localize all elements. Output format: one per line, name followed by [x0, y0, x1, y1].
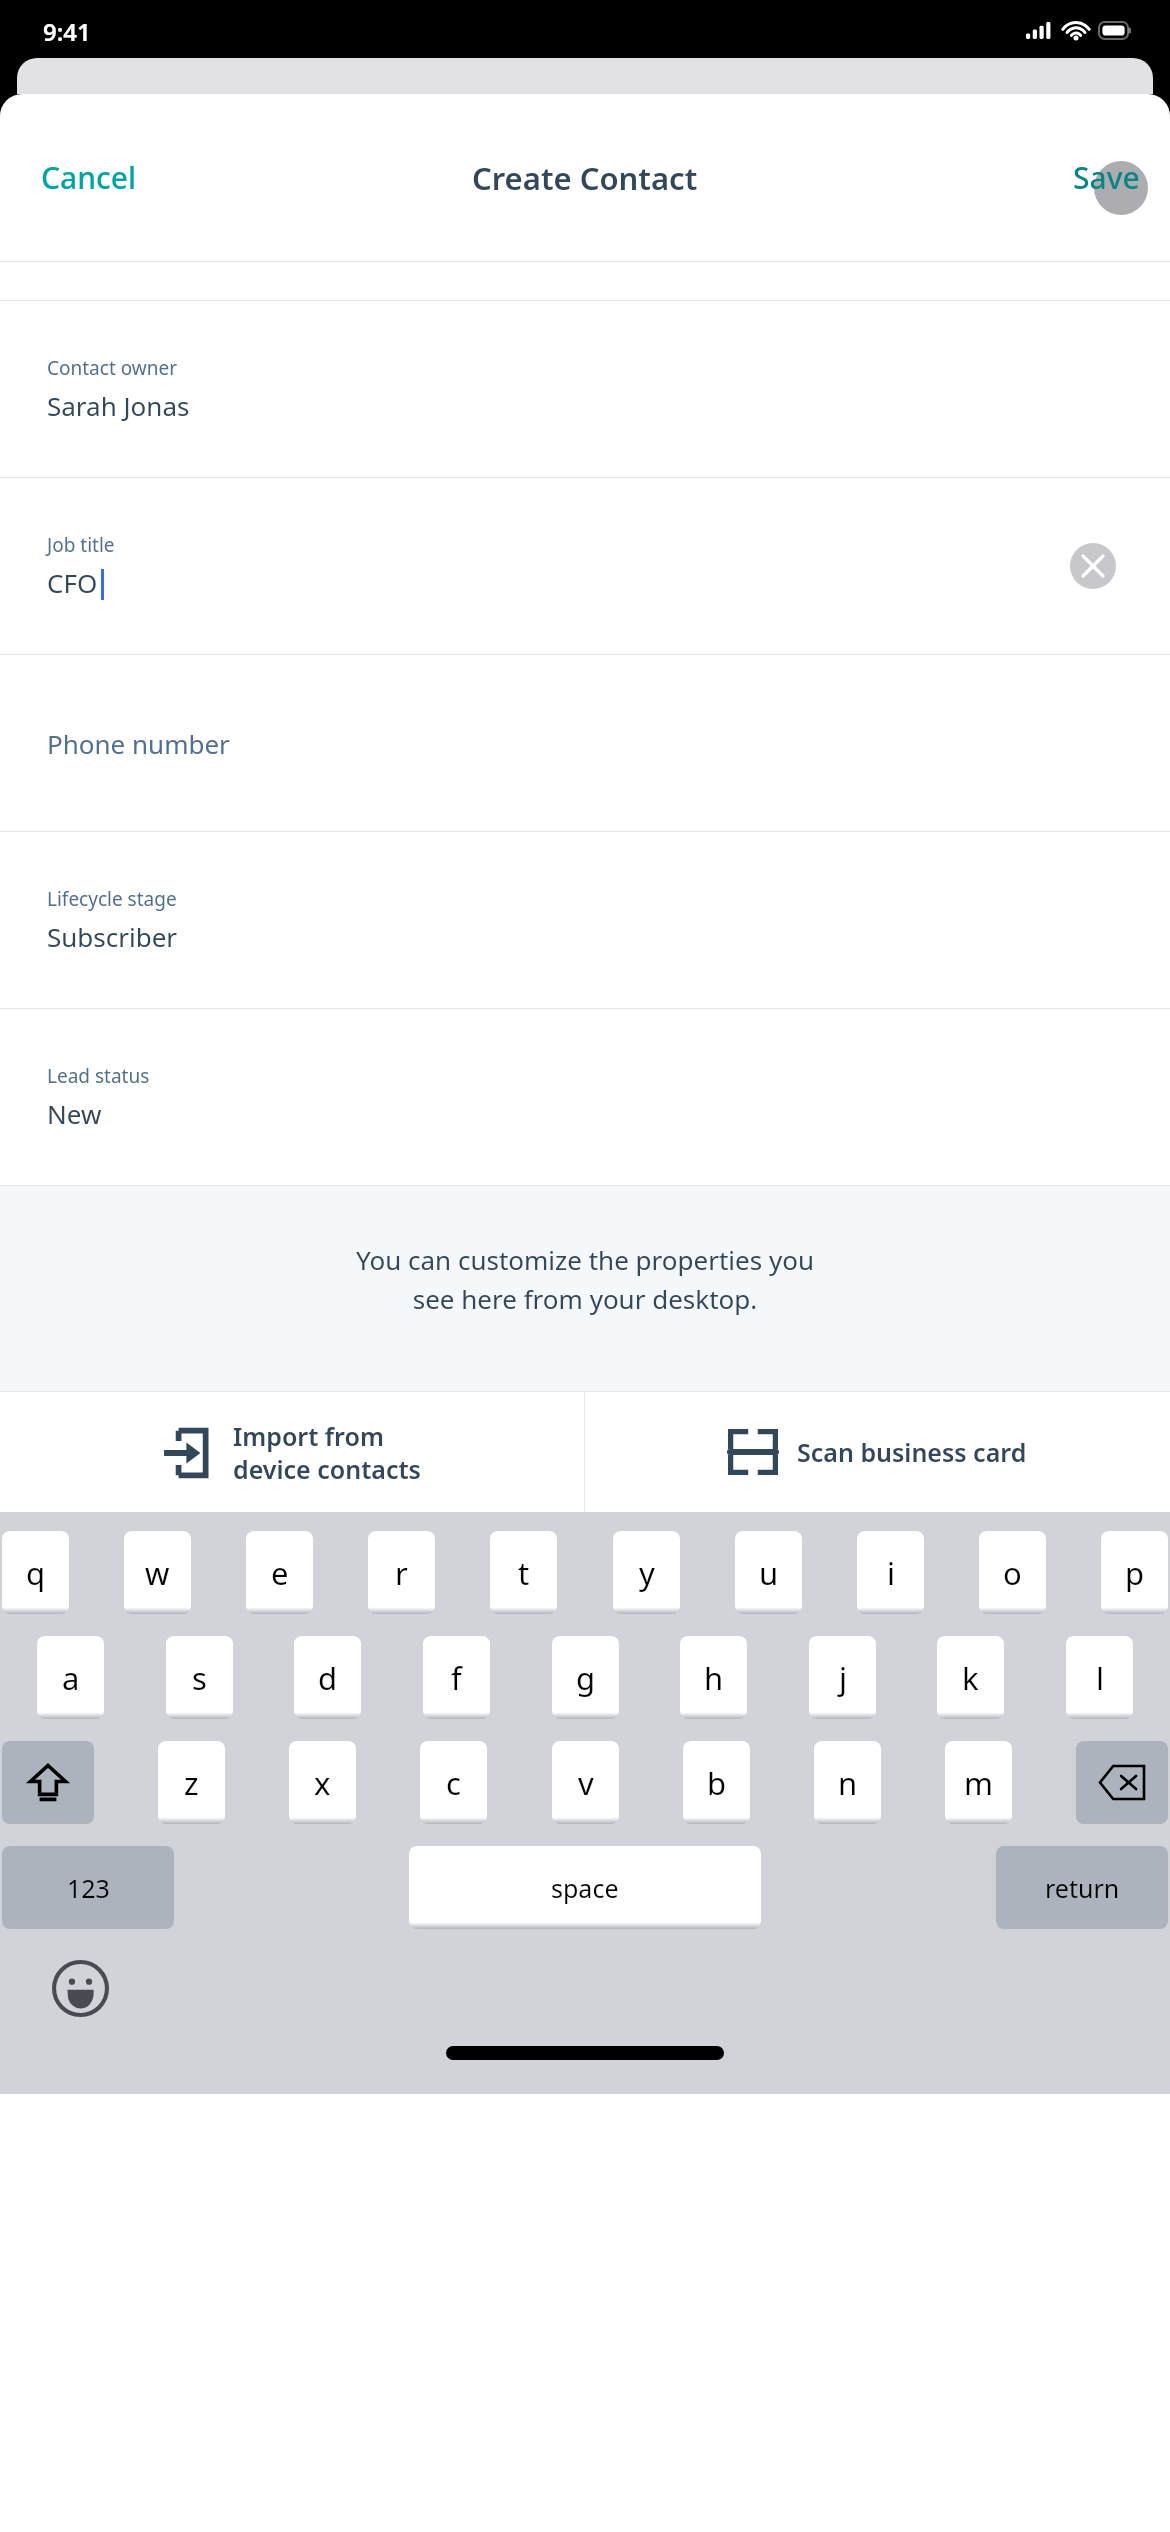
staticText: Lead status	[47, 1063, 150, 1089]
staticText: h	[704, 1657, 724, 1699]
button[interactable]: 123	[2, 1846, 174, 1929]
staticText: Lifecycle stage	[47, 886, 177, 912]
button[interactable]: s	[166, 1636, 233, 1719]
button[interactable]: h	[680, 1636, 747, 1719]
button[interactable]: Cancel	[33, 149, 145, 206]
staticText: d	[318, 1657, 338, 1699]
button[interactable]: Job title	[0, 478, 1170, 654]
button[interactable]: p	[1101, 1531, 1168, 1614]
staticText: l	[1096, 1657, 1104, 1699]
button[interactable]: w	[124, 1531, 191, 1614]
staticText: New	[47, 1096, 102, 1131]
button[interactable]: y	[613, 1531, 680, 1614]
staticText: Save	[1073, 157, 1140, 198]
button[interactable]: Phone number	[0, 655, 1170, 831]
staticText: j	[839, 1657, 847, 1699]
button[interactable]: x	[289, 1741, 356, 1824]
staticText: n	[838, 1762, 858, 1804]
staticText: q	[26, 1552, 46, 1594]
staticText: g	[576, 1657, 596, 1699]
staticText: b	[707, 1762, 727, 1804]
staticText: Job title	[47, 532, 115, 558]
staticText: v	[578, 1762, 594, 1804]
button[interactable]: Scan business card	[585, 1392, 1170, 1512]
button[interactable]: d	[294, 1636, 361, 1719]
staticText: Contact owner	[47, 355, 178, 381]
button[interactable]: a	[37, 1636, 104, 1719]
button[interactable]: l	[1066, 1636, 1133, 1719]
button[interactable]: v	[552, 1741, 619, 1824]
button[interactable]: e	[246, 1531, 313, 1614]
button[interactable]: g	[552, 1636, 619, 1719]
staticText: m	[964, 1762, 993, 1804]
staticText: Phone number	[47, 726, 230, 761]
staticText: x	[314, 1762, 331, 1804]
button[interactable]: Emoji keyboard	[52, 1960, 109, 2017]
button[interactable]: Import from device contacts	[0, 1392, 584, 1512]
staticText: k	[962, 1657, 979, 1699]
staticText: 9:41	[43, 15, 91, 48]
staticText: u	[759, 1552, 779, 1594]
button[interactable]: Save	[1065, 149, 1148, 206]
staticText: y	[639, 1552, 655, 1594]
button[interactable]: o	[979, 1531, 1046, 1614]
staticText: Sarah Jonas	[47, 388, 190, 423]
staticText: t	[518, 1552, 530, 1594]
staticText: c	[446, 1762, 461, 1804]
staticText: f	[451, 1657, 462, 1699]
staticText: CFO	[47, 565, 98, 600]
staticText: a	[62, 1657, 80, 1699]
staticText: r	[395, 1552, 408, 1594]
button[interactable]: f	[423, 1636, 490, 1719]
staticText: You can customize the properties you see…	[356, 1242, 814, 1317]
button[interactable]: return	[996, 1846, 1168, 1929]
button[interactable]: n	[814, 1741, 881, 1824]
staticText: i	[887, 1552, 895, 1594]
button[interactable]: Contact owner	[0, 301, 1170, 477]
staticText: Create Contact	[472, 157, 698, 199]
button[interactable]: c	[420, 1741, 487, 1824]
button[interactable]: b	[683, 1741, 750, 1824]
button[interactable]: space	[409, 1846, 761, 1929]
staticText: Subscriber	[47, 919, 178, 954]
staticText: p	[1125, 1552, 1145, 1594]
button[interactable]: k	[937, 1636, 1004, 1719]
button[interactable]: Key	[1076, 1741, 1168, 1824]
staticText: Cancel	[41, 157, 137, 198]
button[interactable]: i	[857, 1531, 924, 1614]
button[interactable]: z	[158, 1741, 225, 1824]
staticText: s	[192, 1657, 207, 1699]
button[interactable]: r	[368, 1531, 435, 1614]
button[interactable]: Key	[2, 1741, 94, 1824]
button[interactable]: u	[735, 1531, 802, 1614]
staticText: 123	[67, 1871, 110, 1905]
button[interactable]: t	[490, 1531, 557, 1614]
button[interactable]: m	[945, 1741, 1012, 1824]
staticText: return	[1045, 1871, 1120, 1905]
staticText: e	[271, 1552, 289, 1594]
button[interactable]: q	[2, 1531, 69, 1614]
staticText: z	[184, 1762, 199, 1804]
staticText: Scan business card	[797, 1435, 1027, 1469]
staticText: o	[1003, 1552, 1022, 1594]
staticText: w	[145, 1552, 170, 1594]
staticText: space	[551, 1871, 619, 1905]
button[interactable]: Lead status	[0, 1009, 1170, 1185]
button[interactable]: Lifecycle stage	[0, 832, 1170, 1008]
staticText: Import from device contacts	[233, 1419, 421, 1486]
button[interactable]: Clear text	[1070, 543, 1116, 589]
button[interactable]: j	[809, 1636, 876, 1719]
